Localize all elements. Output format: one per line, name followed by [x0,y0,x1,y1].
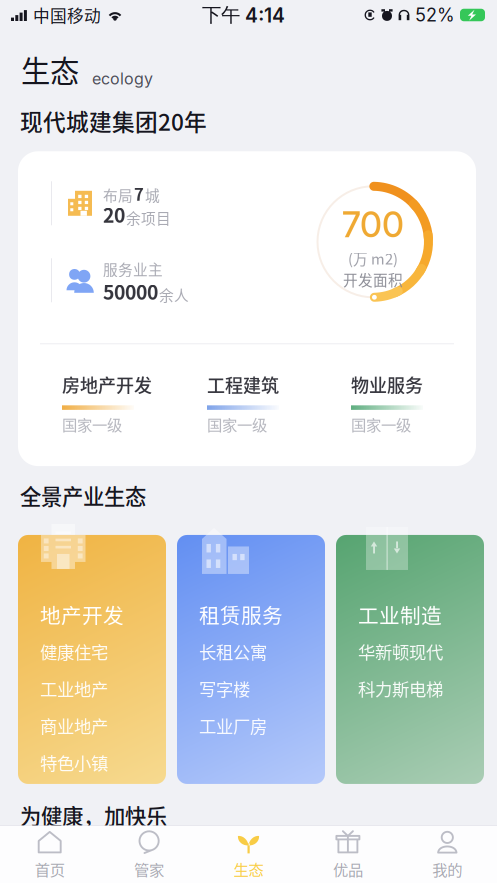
staticText: 城 [145,184,160,205]
staticText: 生态 [233,858,263,880]
staticText: 下午 4:14 [202,3,285,27]
button[interactable]: 管家 [99,822,199,883]
staticText: 20 [103,200,125,228]
staticText: 特色小镇 [40,750,108,775]
staticText: 生态 [21,48,79,90]
button[interactable]: 地产开发 [18,522,166,784]
staticText: 工业制造 [358,599,442,629]
staticText: 全景产业生态 [20,480,146,511]
staticText: 余项目 [126,207,171,228]
staticText: 余人 [159,284,189,305]
staticText: 7 [134,181,144,205]
staticText: 工业厂房 [199,713,267,738]
staticText: 现代城建集团20年 [20,104,207,137]
button[interactable]: 租赁服务 [177,522,325,784]
staticText: 商业地产 [40,713,108,738]
staticText: 国家一级 [207,413,267,435]
staticText: 50000 [103,277,158,305]
staticText: 中国移动 [33,3,101,27]
staticText: 服务业主 [103,258,163,279]
staticText: 租赁服务 [199,599,283,629]
staticText: 布局 [103,184,133,205]
staticText: 工程建筑 [207,371,279,397]
staticText: 为健康，加快乐 [20,800,167,831]
staticText: 700 [342,204,404,245]
staticText: 地产开发 [40,599,124,629]
staticText: 国家一级 [62,413,122,435]
staticText: 我的 [432,858,462,880]
button[interactable]: 优品 [298,822,398,883]
button[interactable]: 工业制造 [336,522,484,784]
staticText: 物业服务 [351,371,423,397]
staticText: ecology [92,69,153,88]
staticText: 国家一级 [351,413,411,435]
button[interactable]: 我的 [398,822,497,883]
staticText: 房地产开发 [62,371,152,397]
staticText: 首页 [35,858,65,880]
button[interactable]: 生态 [199,822,298,883]
staticText: 开发面积 [343,269,403,290]
staticText: 健康住宅 [40,639,108,664]
staticText: 工业地产 [40,676,108,701]
staticText: 长租公寓 [199,639,267,664]
staticText: 写字楼 [199,676,250,701]
button[interactable]: 首页 [0,822,99,883]
staticText: 管家 [134,858,164,880]
staticText: 52% [415,4,455,26]
staticText: 优品 [333,858,363,880]
staticText: (万 m2) [348,247,398,269]
staticText: 华新顿现代 [358,639,443,664]
staticText: 科力斯电梯 [358,676,443,701]
